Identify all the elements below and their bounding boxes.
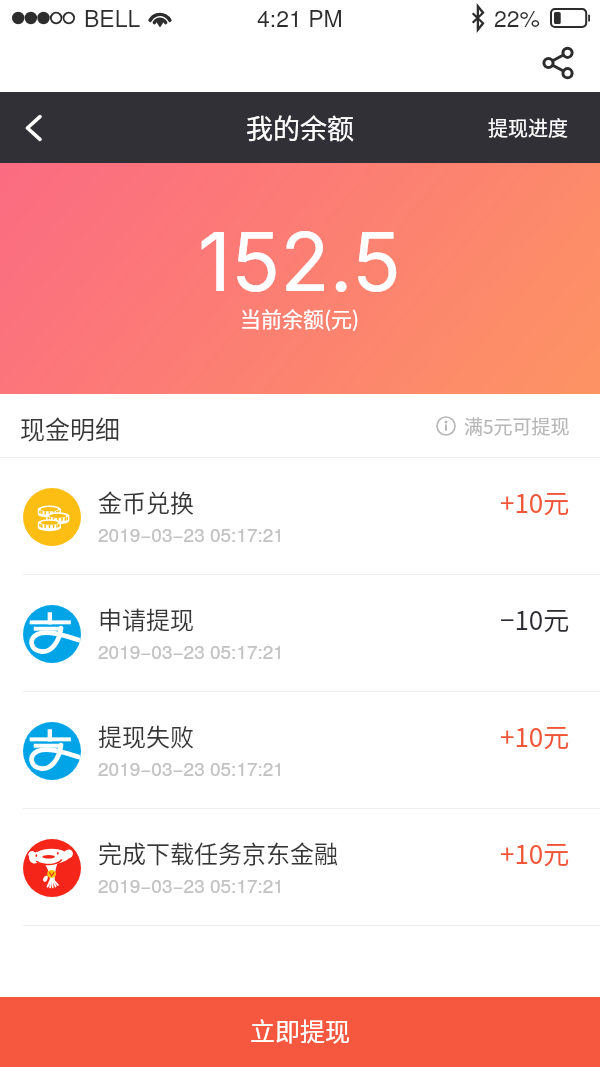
button[interactable]: Share (536, 41, 580, 85)
staticText: 22% (494, 1, 541, 34)
staticText: 2019−03−23 05:17:21 (98, 754, 284, 781)
staticText: 4:21 PM (257, 1, 343, 34)
staticText: 满5元可提现 (464, 412, 570, 440)
staticText: 提现进度 (488, 113, 568, 142)
staticText: 立即提现 (250, 1012, 351, 1048)
button[interactable]: Back (8, 102, 60, 154)
staticText: 2019−03−23 05:17:21 (98, 520, 284, 547)
staticText: 2019−03−23 05:17:21 (98, 871, 284, 898)
button[interactable]: 申请提现 (0, 575, 600, 692)
staticText: +10元 (500, 483, 570, 521)
button[interactable]: 金币兑换 (0, 458, 600, 575)
staticText: 现金明细 (20, 410, 121, 446)
button[interactable]: 满5元可提现 (430, 404, 576, 448)
staticText: BELL (84, 1, 141, 34)
button[interactable]: 提现失败 (0, 692, 600, 809)
staticText: 完成下载任务京东金融 (98, 835, 338, 870)
staticText: 金币兑换 (98, 484, 194, 519)
staticText: 我的余额 (246, 108, 354, 147)
staticText: 2019−03−23 05:17:21 (98, 637, 284, 664)
staticText: +10元 (500, 834, 570, 872)
staticText: −10元 (500, 600, 570, 638)
button[interactable]: 完成下载任务京东金融 (0, 809, 600, 926)
staticText: 提现失败 (98, 718, 194, 753)
staticText: 当前余额(元) (240, 303, 360, 333)
staticText: 152.5 (198, 213, 402, 311)
button[interactable]: 立即提现 (0, 997, 600, 1067)
button[interactable]: 提现进度 (476, 105, 580, 150)
staticText: +10元 (500, 717, 570, 755)
staticText: 申请提现 (98, 601, 194, 636)
